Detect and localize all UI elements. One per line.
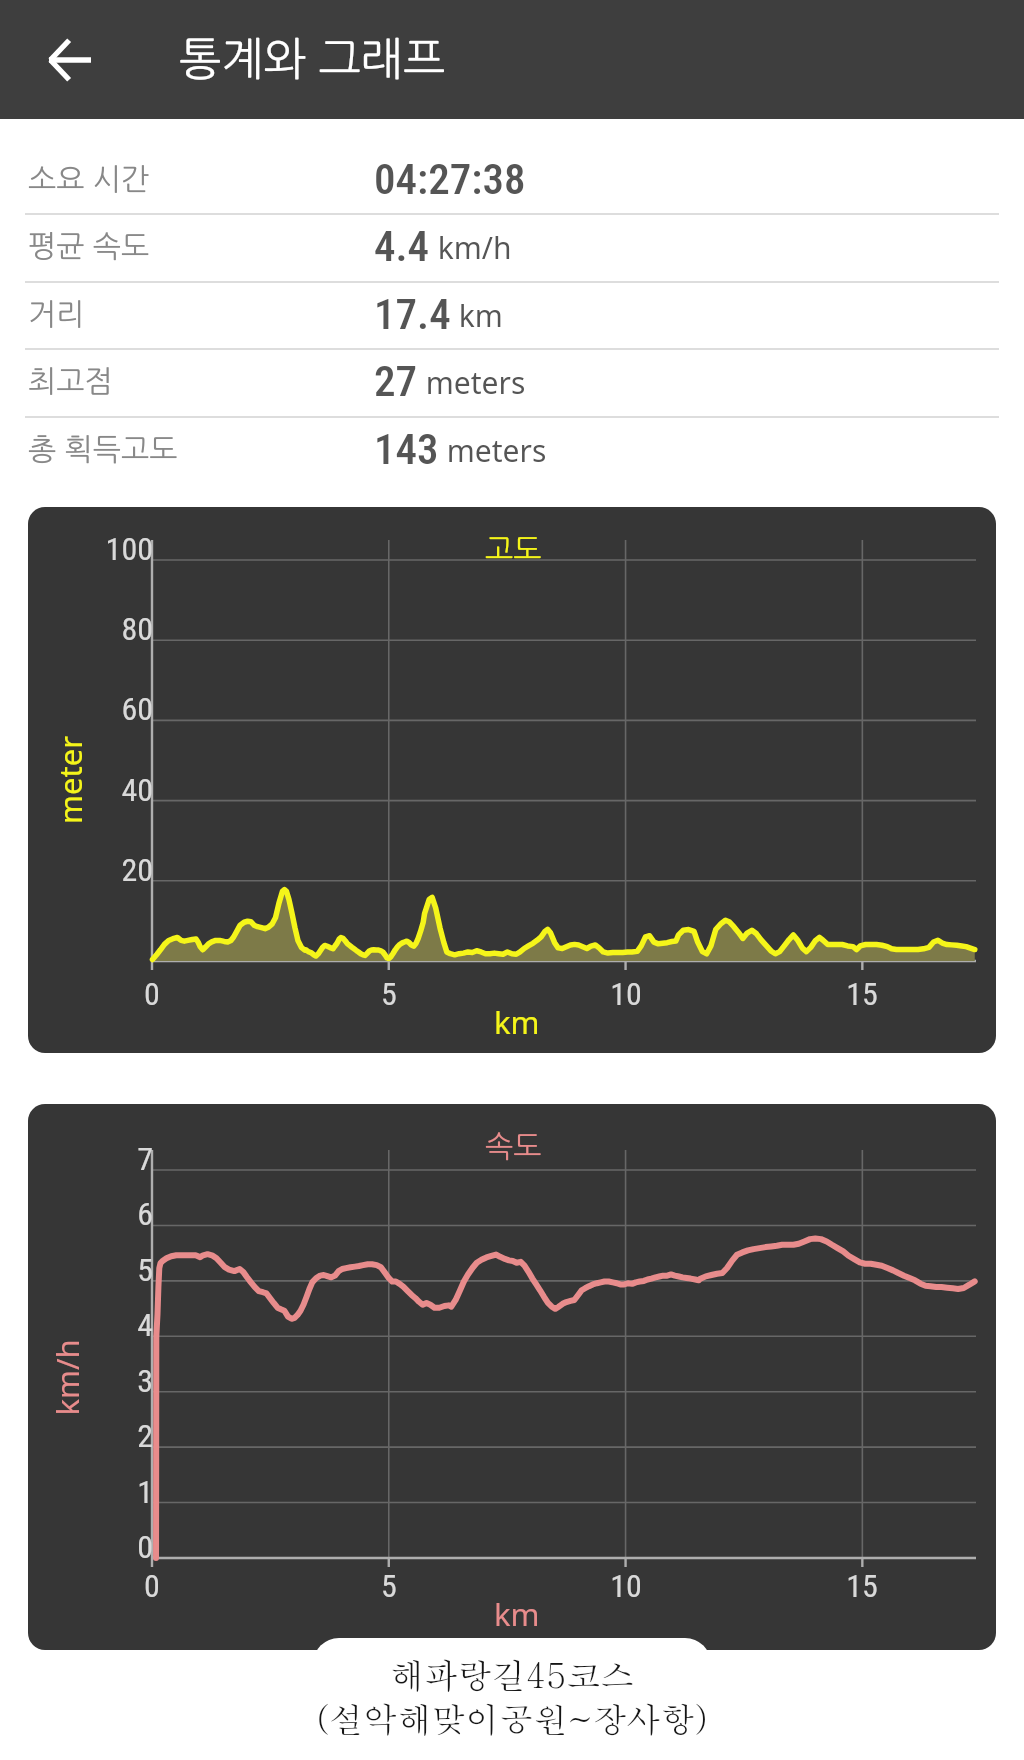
staticText: 0 <box>34 1528 153 1566</box>
staticText: km <box>451 295 503 336</box>
staticText: 6 <box>34 1195 153 1233</box>
staticText: 4 <box>34 1306 153 1344</box>
button[interactable]: Back <box>34 24 106 96</box>
staticText: km <box>494 1593 540 1635</box>
staticText: 거리 <box>28 299 85 329</box>
staticText: meters <box>418 362 526 403</box>
staticText: 고도 <box>485 534 542 564</box>
staticText: 143 <box>374 424 439 474</box>
staticText: 40 <box>34 771 153 809</box>
staticText: 2 <box>34 1417 153 1455</box>
staticText: 7 <box>34 1140 153 1178</box>
staticText: 평균 속도 <box>28 231 150 261</box>
staticText: km <box>494 1001 540 1043</box>
staticText: 총 획득고도 <box>28 434 178 464</box>
staticText: 통계와 그래프 <box>179 36 446 81</box>
staticText: 100 <box>34 530 153 568</box>
staticText: meters <box>439 430 547 471</box>
button[interactable]: Speed chart <box>28 1104 996 1650</box>
staticText: 0 <box>112 975 192 1013</box>
staticText: 60 <box>34 690 153 728</box>
staticText: 10 <box>586 975 666 1013</box>
staticText: 속도 <box>485 1131 542 1161</box>
staticText: 해파랑길45코스 <box>0 1649 1024 1697</box>
button[interactable] <box>313 1638 711 1760</box>
staticText: 15 <box>822 1567 902 1605</box>
staticText: km/h <box>45 1338 87 1415</box>
staticText: 최고점 <box>28 366 113 396</box>
staticText: 10 <box>586 1567 666 1605</box>
staticText: km/h <box>430 227 512 268</box>
staticText: 04:27:38 <box>374 154 526 204</box>
staticText: 3 <box>34 1362 153 1400</box>
staticText: meter <box>49 736 91 824</box>
staticText: 20 <box>34 851 153 889</box>
button[interactable]: Elevation chart <box>28 507 996 1053</box>
staticText: 5 <box>34 1251 153 1289</box>
staticText: 27 <box>374 356 418 406</box>
staticText: 0 <box>112 1567 192 1605</box>
staticText: 5 <box>349 975 429 1013</box>
staticText: (설악해맞이공원~장사항) <box>0 1693 1024 1741</box>
staticText: 4.4 <box>374 221 430 271</box>
staticText: 1 <box>34 1473 153 1511</box>
staticText: 17.4 <box>374 289 451 339</box>
staticText: 소요 시간 <box>28 164 150 194</box>
staticText: 5 <box>349 1567 429 1605</box>
staticText: 80 <box>34 610 153 648</box>
staticText: 15 <box>822 975 902 1013</box>
